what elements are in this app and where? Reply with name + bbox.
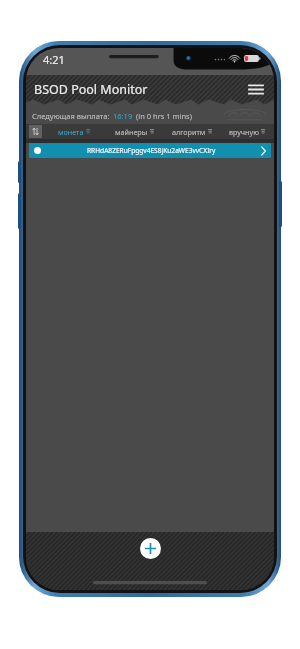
staticText: майнеры (115, 127, 148, 137)
staticText: (in 0 hrs 1 mins) (136, 111, 192, 121)
staticText: вручную (229, 127, 259, 137)
button[interactable]: майнеры (106, 124, 163, 139)
staticText: алгоритм (172, 127, 206, 137)
button[interactable]: Menu (245, 78, 267, 100)
staticText: монета (58, 127, 84, 137)
staticText: Следующая выплата: (32, 111, 110, 121)
button[interactable]: вручную (220, 124, 274, 139)
staticText: BSOD Pool Monitor (34, 81, 148, 98)
button[interactable]: RRHdA8ZERuFpggv4ES8jKu2aWE3vvCXIry (29, 143, 271, 158)
button[interactable]: алгоритм (163, 124, 220, 139)
staticText: 16:19 (113, 111, 133, 121)
staticText: 4:21 (43, 52, 65, 67)
button[interactable]: Sort (29, 125, 42, 138)
button[interactable]: монета (42, 124, 106, 139)
staticText: RRHdA8ZERuFpggv4ES8jKu2aWE3vvCXIry (87, 146, 216, 155)
button[interactable]: Add (140, 538, 161, 559)
